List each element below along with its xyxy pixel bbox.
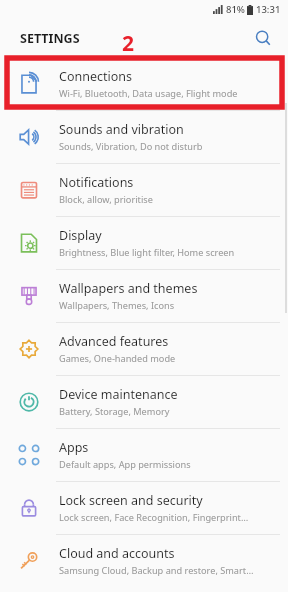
button[interactable]: Connections	[0, 58, 288, 110]
staticText: Default apps, App permissions	[59, 458, 191, 471]
staticText: Games, One-handed mode	[59, 352, 176, 365]
button[interactable]: Cloud and accounts	[0, 535, 288, 587]
staticText: Block, allow, prioritise	[59, 193, 153, 206]
button[interactable]: Sounds and vibration	[0, 111, 288, 163]
staticText: 2	[122, 29, 135, 58]
button[interactable]: Device maintenance	[0, 376, 288, 428]
staticText: Wallpapers, Themes, Icons	[59, 299, 175, 312]
staticText: Lock screen and security	[59, 492, 203, 509]
button[interactable]: Search	[248, 23, 278, 53]
staticText: Wi-Fi, Bluetooth, Data usage, Flight mod…	[59, 87, 238, 100]
staticText: Wallpapers and themes	[59, 280, 198, 297]
button[interactable]: Lock screen and security	[0, 482, 288, 534]
staticText: SETTINGS	[20, 30, 80, 47]
staticText: Device maintenance	[59, 386, 178, 403]
button[interactable]: Apps	[0, 429, 288, 481]
staticText: 13:31	[256, 3, 281, 16]
staticText: Samsung Cloud, Backup and restore, Smart…	[59, 564, 254, 577]
staticText: Battery, Storage, Memory	[59, 405, 170, 418]
button[interactable]: Wallpapers and themes	[0, 270, 288, 322]
staticText: Sounds, Vibration, Do not disturb	[59, 140, 203, 153]
staticText: Advanced features	[59, 333, 169, 350]
staticText: Brightness, Blue light filter, Home scre…	[59, 246, 235, 259]
staticText: Cloud and accounts	[59, 545, 175, 562]
staticText: Apps	[59, 439, 89, 456]
button[interactable]: Notifications	[0, 164, 288, 216]
staticText: Notifications	[59, 174, 134, 191]
button[interactable]: Display	[0, 217, 288, 269]
staticText: Lock screen, Face Recognition, Fingerpri…	[59, 511, 249, 524]
staticText: Sounds and vibration	[59, 121, 184, 138]
staticText: Display	[59, 227, 102, 244]
staticText: 81%	[226, 3, 245, 16]
staticText: Connections	[59, 68, 132, 85]
button[interactable]: Advanced features	[0, 323, 288, 375]
